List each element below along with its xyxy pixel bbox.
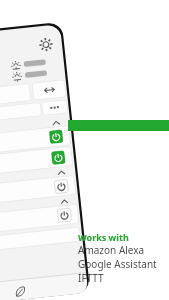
staticText: IFTTT [78,271,104,285]
staticText: Works with [78,231,129,243]
staticText: Google Assistant [78,257,157,271]
button[interactable]: Toggle light power [30,156,50,176]
button[interactable]: Settings [50,40,68,58]
staticText: Amazon Alexa [78,243,145,257]
button[interactable]: Toggle device power [30,135,50,155]
button[interactable]: Works with [78,231,157,285]
